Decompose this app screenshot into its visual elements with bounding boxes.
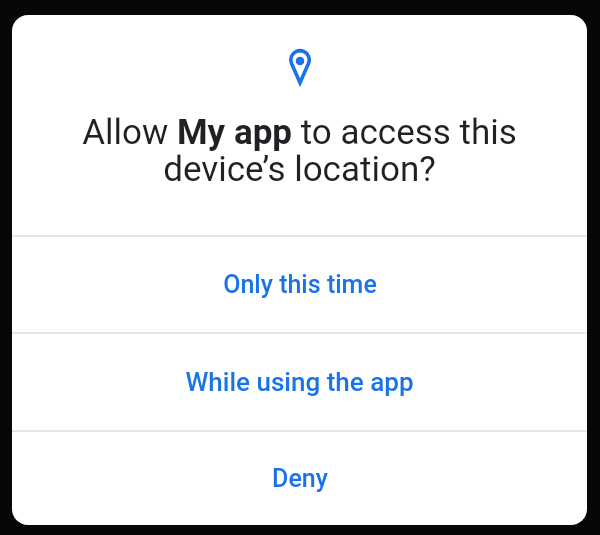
staticText: Only this time bbox=[223, 270, 377, 299]
button[interactable]: While using the app bbox=[12, 334, 587, 430]
staticText: Allow My app to access this device’s loc… bbox=[12, 112, 587, 190]
staticText: Deny bbox=[272, 464, 328, 493]
button[interactable]: Only this time bbox=[12, 237, 587, 332]
button[interactable]: Deny bbox=[12, 432, 587, 525]
staticText: While using the app bbox=[185, 367, 414, 397]
